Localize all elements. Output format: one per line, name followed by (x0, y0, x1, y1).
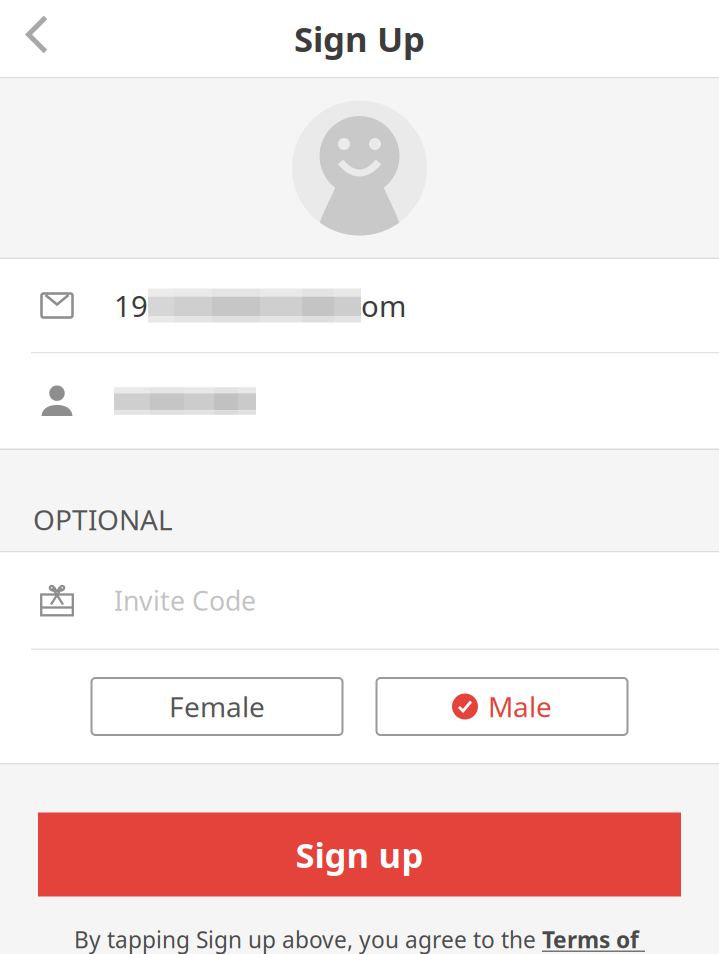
staticText: OPTIONAL (33, 501, 173, 538)
staticText: Female (169, 688, 265, 725)
button[interactable]: Female (91, 678, 342, 735)
staticText: om (361, 286, 406, 325)
button[interactable]: Sign up (38, 812, 681, 896)
staticText: Sign Up (294, 15, 425, 61)
button[interactable]: Back (0, 0, 74, 77)
button[interactable]: Email address (0, 259, 719, 352)
button[interactable]: Choose profile photo (292, 100, 427, 235)
staticText: Invite Code (114, 583, 256, 618)
staticText: By tapping Sign up above, you agree to t… (74, 924, 645, 954)
button[interactable]: Invite Code (0, 552, 719, 648)
staticText: Sign up (295, 831, 423, 877)
button[interactable]: Name (0, 353, 719, 448)
staticText: 19 (114, 286, 148, 325)
button[interactable]: Male (376, 678, 627, 735)
staticText: Male (488, 688, 552, 725)
